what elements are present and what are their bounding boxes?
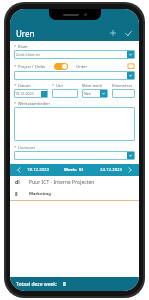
button[interactable]: Save bbox=[122, 27, 134, 39]
staticText: Week: 51 bbox=[64, 167, 84, 173]
staticText: * bbox=[14, 101, 17, 106]
button[interactable]: Next week bbox=[125, 165, 135, 175]
staticText: Marketing bbox=[29, 191, 51, 197]
button[interactable]: 8 bbox=[10, 188, 139, 200]
button[interactable] bbox=[52, 89, 78, 98]
button[interactable]: Dropdown bbox=[14, 151, 135, 160]
staticText: 8 bbox=[15, 191, 29, 197]
staticText: Uursoort bbox=[18, 145, 35, 150]
staticText: di bbox=[15, 179, 29, 186]
button[interactable] bbox=[112, 89, 135, 98]
staticText: 24-12-2023 bbox=[100, 167, 122, 173]
staticText: Datum bbox=[18, 83, 31, 88]
staticText: Klant bbox=[18, 44, 28, 49]
staticText: 18-12-2023 bbox=[27, 167, 49, 173]
staticText: 8 bbox=[63, 281, 66, 288]
staticText: * bbox=[14, 145, 17, 150]
staticText: Nee bbox=[84, 91, 100, 96]
staticText: Uren bbox=[16, 28, 35, 39]
staticText: Totaal deze week: bbox=[16, 281, 58, 288]
button[interactable]: Nee bbox=[82, 89, 108, 98]
staticText: * bbox=[14, 64, 17, 69]
button[interactable]: Toggle project order bbox=[54, 63, 68, 70]
staticText: 19-12-2023 bbox=[15, 91, 41, 96]
staticText: Project / Order bbox=[18, 64, 46, 69]
staticText: Kilometers bbox=[112, 83, 133, 88]
button[interactable]: Dropdown bbox=[14, 71, 135, 80]
button[interactable]: Add bbox=[107, 27, 119, 39]
staticText: * bbox=[14, 83, 17, 88]
staticText: Zoek klant en bbox=[16, 52, 127, 57]
staticText: Puur ICT - Interne Projecten bbox=[29, 179, 95, 186]
staticText: Meer werk bbox=[82, 83, 103, 88]
button[interactable]: di bbox=[10, 176, 139, 188]
staticText: * bbox=[14, 44, 17, 49]
button[interactable]: New order bbox=[127, 62, 135, 70]
staticText: Werkzaamheden bbox=[18, 101, 50, 106]
button[interactable]: 19-12-2023 bbox=[14, 89, 48, 98]
staticText: Uur bbox=[56, 83, 64, 88]
button[interactable]: Dropdown bbox=[14, 50, 135, 59]
staticText: Order bbox=[76, 64, 88, 69]
button[interactable] bbox=[14, 107, 135, 141]
button[interactable]: Previous week bbox=[14, 165, 24, 175]
staticText: * bbox=[52, 83, 55, 88]
